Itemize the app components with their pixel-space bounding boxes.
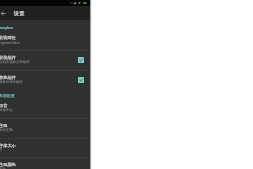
staticText: 语言 — [0, 103, 8, 108]
staticText: 界面设置 — [0, 93, 15, 98]
button[interactable]: 语言 — [0, 98, 90, 118]
button[interactable]: Back — [0, 7, 9, 19]
button[interactable]: Toggle — [78, 77, 84, 83]
button[interactable]: 安装路径 — [0, 30, 90, 50]
staticText: /system/xbin — [0, 40, 20, 45]
staticText: 设置 — [14, 10, 25, 17]
staticText: busybox — [0, 25, 14, 30]
staticText: 简体中文 — [0, 108, 13, 112]
staticText: 字体大小 — [0, 143, 16, 148]
staticText: 主题 — [0, 123, 8, 128]
button[interactable]: 安装组件 — [0, 50, 90, 70]
staticText: 替换已有的组件 — [0, 80, 23, 84]
staticText: 中 — [0, 148, 3, 152]
staticText: 自动安装缺少的组件 — [0, 60, 30, 64]
button[interactable]: Toggle — [78, 57, 84, 63]
button[interactable]: 主题 — [0, 118, 90, 138]
staticText: 安装组件 — [0, 55, 16, 60]
staticText: 深色主题 — [0, 128, 13, 132]
button[interactable]: 主题颜色 — [0, 157, 90, 169]
staticText: 蓝色 — [0, 167, 6, 169]
staticText: 安装路径 — [0, 35, 16, 40]
staticText: 主题颜色 — [0, 162, 16, 167]
button[interactable]: 替换组件 — [0, 70, 90, 90]
button[interactable]: 字体大小 — [0, 138, 90, 158]
staticText: 替换组件 — [0, 75, 16, 80]
